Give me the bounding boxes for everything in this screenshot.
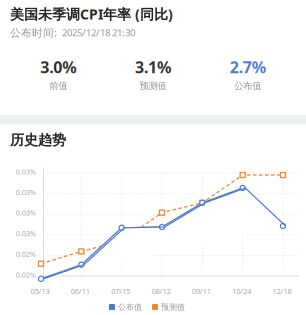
staticText: 10/24	[232, 286, 251, 296]
staticText: 2025/12/18 21:30	[62, 26, 135, 39]
staticText: 0.03%	[16, 166, 36, 177]
staticText: 美国未季调CPI年率 (同比)	[10, 4, 173, 24]
staticText: 0.03%	[16, 187, 36, 197]
staticText: 预测值	[139, 80, 166, 92]
staticText: 09/11	[192, 286, 211, 296]
staticText: 08/12	[151, 286, 170, 296]
staticText: 07/15	[111, 286, 130, 296]
staticText: 公布时间:	[10, 25, 57, 40]
staticText: 3.0%	[40, 56, 76, 78]
button[interactable]: 2.7%	[200, 56, 295, 92]
staticText: 公布值	[234, 80, 261, 92]
staticText: 公布值	[118, 302, 142, 312]
staticText: 历史趋势	[10, 131, 66, 149]
staticText: 06/11	[71, 286, 90, 296]
staticText: 0.02%	[16, 249, 36, 259]
staticText: 前值	[49, 80, 67, 92]
button[interactable]: 3.0%	[11, 56, 106, 92]
staticText: 2.7%	[230, 56, 266, 78]
staticText: 05/13	[30, 286, 49, 296]
staticText: 3.1%	[135, 56, 171, 78]
staticText: 0.03%	[16, 228, 36, 238]
staticText: 0.02%	[16, 269, 36, 280]
staticText: 12/18	[272, 286, 291, 296]
staticText: 预测值	[161, 302, 185, 312]
button[interactable]: 3.1%	[106, 56, 200, 92]
staticText: 0.03%	[16, 208, 36, 218]
